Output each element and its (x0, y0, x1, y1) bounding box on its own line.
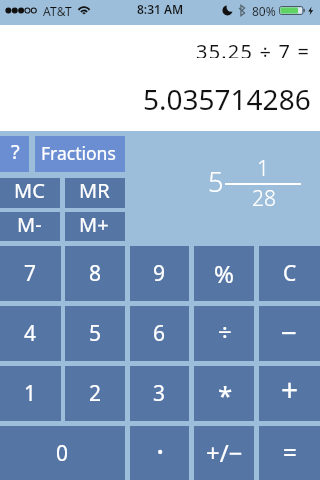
button[interactable]: ? (0, 136, 29, 172)
button[interactable]: * (194, 366, 254, 421)
button[interactable]: + (259, 366, 320, 421)
staticText: 4 (24, 319, 37, 348)
staticText: 8:31 AM (137, 1, 184, 17)
staticText: 5 (89, 319, 102, 348)
button[interactable]: 8 (65, 246, 125, 301)
button[interactable]: M+ (65, 212, 125, 241)
button[interactable]: MR (65, 178, 125, 208)
button[interactable]: 1 (0, 366, 61, 421)
button[interactable]: M- (0, 212, 60, 241)
staticText: 28 (252, 184, 276, 211)
button[interactable]: 4 (0, 306, 61, 361)
staticText: 9 (153, 259, 166, 288)
staticText: ÷ (218, 315, 232, 348)
button[interactable]: MC (0, 178, 60, 208)
staticText: AT&T (43, 3, 72, 19)
button[interactable]: 9 (130, 246, 189, 301)
staticText: 0 (56, 439, 69, 468)
button[interactable]: 6 (130, 306, 189, 361)
staticText: 7 (24, 259, 37, 288)
staticText: 35.25 ÷ 7 = (196, 38, 311, 58)
button[interactable]: 5 (65, 306, 125, 361)
staticText: 5 (208, 163, 224, 200)
button[interactable]: • (130, 426, 189, 480)
button[interactable]: − (259, 306, 320, 361)
button[interactable]: 0 (0, 426, 125, 480)
staticText: 8 (89, 259, 102, 288)
staticText: 6 (153, 319, 166, 348)
staticText: 1 (24, 379, 37, 408)
staticText: M- (17, 211, 42, 238)
staticText: = (283, 435, 297, 468)
staticText: M+ (79, 211, 109, 238)
staticText: % (214, 257, 234, 290)
staticText: 3 (153, 379, 166, 408)
staticText: MR (79, 177, 110, 204)
staticText: + (281, 369, 299, 410)
staticText: +/− (206, 436, 243, 469)
staticText: MC (14, 177, 45, 204)
staticText: C (283, 259, 297, 288)
button[interactable]: % (194, 246, 254, 301)
staticText: * (218, 377, 233, 412)
button[interactable]: 2 (65, 366, 125, 421)
button[interactable]: ÷ (194, 306, 254, 361)
button[interactable]: +/− (194, 426, 254, 480)
staticText: 80% (252, 3, 276, 19)
button[interactable]: = (259, 426, 320, 480)
staticText: − (281, 313, 298, 351)
staticText: 2 (89, 379, 102, 408)
staticText: 1 (257, 154, 269, 181)
button[interactable]: C (259, 246, 320, 301)
button[interactable]: Fractions (35, 136, 125, 172)
button[interactable]: 3 (130, 366, 189, 421)
staticText: 5.035714286 (143, 80, 311, 114)
staticText: • (157, 440, 164, 463)
staticText: Fractions (41, 141, 116, 165)
staticText: ? (11, 138, 20, 165)
button[interactable]: 7 (0, 246, 61, 301)
